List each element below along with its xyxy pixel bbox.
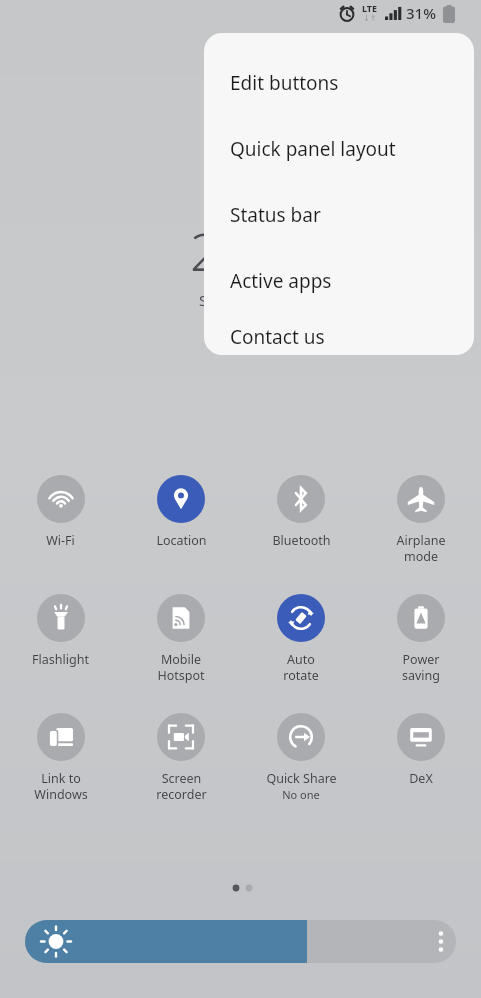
button[interactable]: Mobile Hotspot [121,586,241,683]
button[interactable]: Flashlight [0,586,121,668]
staticText: Power saving [402,651,440,683]
staticText: No one [282,787,320,802]
staticText: Auto rotate [283,651,319,683]
staticText: Link to Windows [34,770,88,802]
button[interactable]: Power saving [361,586,481,683]
button[interactable]: Bluetooth [241,467,361,549]
button[interactable]: Status bar [204,187,474,243]
button[interactable]: Edit buttons [204,55,474,111]
button[interactable]: Auto rotate [241,586,361,683]
staticText: Mobile Hotspot [157,651,205,683]
staticText: Airplane mode [396,532,446,564]
staticText: Edit buttons [230,70,339,96]
staticText: Sat, 15 June [199,290,282,310]
button[interactable]: Active apps [204,253,474,309]
staticText: Quick panel layout [230,136,396,162]
button[interactable]: Quick Share [241,705,361,802]
staticText: 2:00 [190,215,292,286]
staticText: Contact us [230,324,325,350]
staticText: Bluetooth [272,532,331,549]
staticText: ↓↑ [363,14,377,23]
button[interactable]: Wi-Fi [0,467,121,549]
staticText: Location [156,532,207,549]
button[interactable]: Location [121,467,241,549]
staticText: 31% [406,3,436,23]
staticText: Active apps [230,268,332,294]
staticText: Wi-Fi [46,532,75,549]
staticText: LTE [362,2,378,14]
staticText: Quick Share [266,770,337,787]
staticText: Screen recorder [156,770,207,802]
staticText: Status bar [230,202,321,228]
staticText: Flashlight [32,651,89,668]
button[interactable]: Quick panel layout [204,121,474,177]
button[interactable]: Airplane mode [361,467,481,564]
button[interactable]: DeX [361,705,481,787]
staticText: DeX [409,770,433,787]
button[interactable]: Screen recorder [121,705,241,802]
button[interactable]: Brightness [25,920,456,963]
button[interactable]: Link to Windows [0,705,121,802]
button[interactable]: Contact us [204,319,474,355]
